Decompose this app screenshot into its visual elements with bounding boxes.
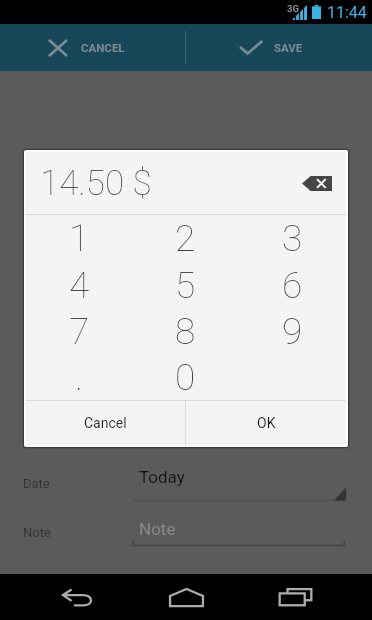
staticText: 3G	[287, 3, 299, 14]
button[interactable]: OK	[186, 401, 346, 445]
staticText: 1	[69, 217, 90, 260]
button[interactable]: Back	[47, 579, 108, 615]
staticText: 4	[69, 264, 90, 307]
button[interactable]: 4	[26, 262, 132, 308]
staticText: OK	[257, 415, 276, 431]
button[interactable]: 1	[26, 215, 132, 262]
button[interactable]: 0	[132, 354, 239, 400]
button[interactable]: SAVE	[186, 24, 372, 71]
staticText: 11:44	[327, 3, 367, 22]
staticText: Date	[23, 476, 50, 491]
staticText: 5	[175, 264, 196, 307]
button[interactable]: Home	[156, 579, 217, 615]
button[interactable]: CANCEL	[0, 24, 185, 71]
staticText: Note	[23, 525, 51, 540]
button[interactable]: 2	[132, 215, 239, 262]
button[interactable]: 6	[239, 262, 346, 308]
staticText: Cancel	[84, 415, 127, 431]
staticText: 0	[175, 356, 196, 399]
staticText: 14.50 $	[40, 163, 152, 204]
button[interactable]: 9	[239, 308, 346, 354]
button[interactable]: 3	[239, 215, 346, 262]
button[interactable]: Recent apps	[265, 579, 326, 615]
staticText: 2	[175, 217, 196, 260]
staticText: Today	[139, 467, 185, 487]
button[interactable]: 5	[132, 262, 239, 308]
button[interactable]: .	[26, 354, 132, 400]
button[interactable]: Cancel	[26, 401, 185, 445]
staticText: CANCEL	[81, 41, 125, 54]
staticText: 6	[282, 264, 303, 307]
staticText: SAVE	[274, 41, 303, 54]
staticText: 9	[282, 310, 303, 353]
button[interactable]: Backspace	[302, 176, 332, 191]
staticText: 3	[282, 217, 303, 260]
button[interactable]: 7	[26, 308, 132, 354]
staticText: Note	[139, 519, 176, 539]
button[interactable]: 8	[132, 308, 239, 354]
button[interactable]: Date	[0, 459, 372, 507]
staticText: 8	[175, 310, 196, 353]
staticText: .	[75, 356, 83, 399]
staticText: 7	[69, 310, 90, 353]
